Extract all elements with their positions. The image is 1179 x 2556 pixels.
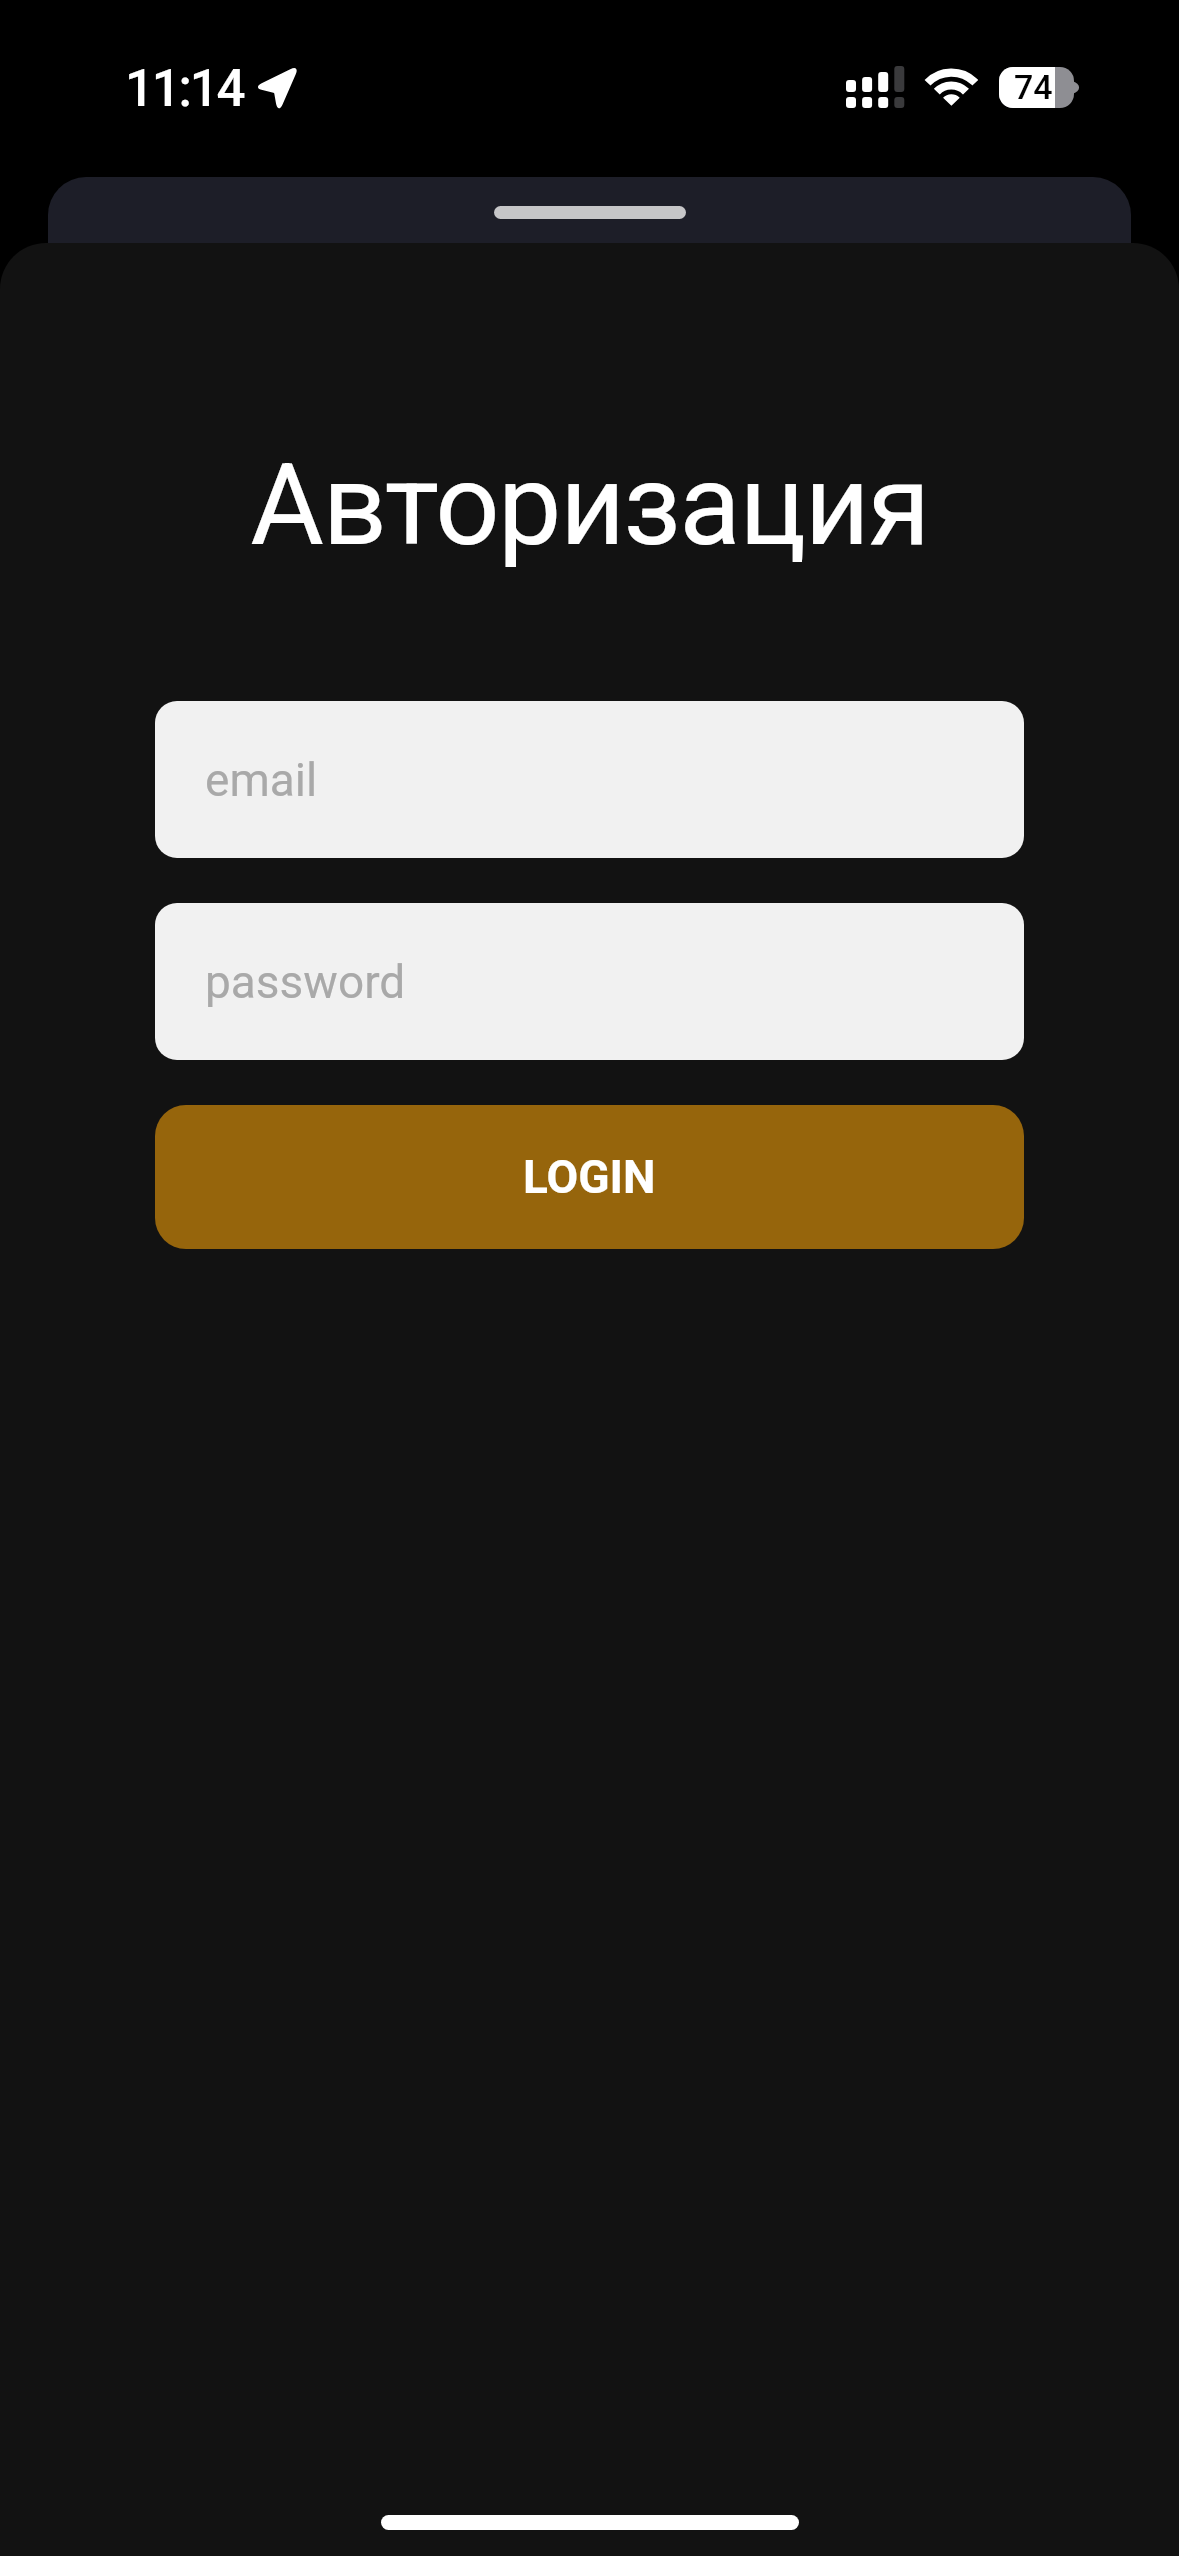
button[interactable]: Dismiss sheet — [48, 177, 1131, 297]
button[interactable]: LOGIN — [155, 1105, 1024, 1249]
other: Location — [258, 62, 304, 108]
staticText: 11:14 — [125, 59, 244, 119]
staticText: password — [205, 955, 406, 1009]
staticText: LOGIN — [523, 1150, 656, 1204]
button[interactable]: email — [155, 701, 1024, 858]
staticText: Авторизация — [0, 439, 1179, 571]
button[interactable]: password — [155, 903, 1024, 1060]
staticText: 74 — [1014, 67, 1053, 107]
staticText: email — [205, 753, 318, 807]
other: Wi-Fi — [920, 62, 984, 110]
